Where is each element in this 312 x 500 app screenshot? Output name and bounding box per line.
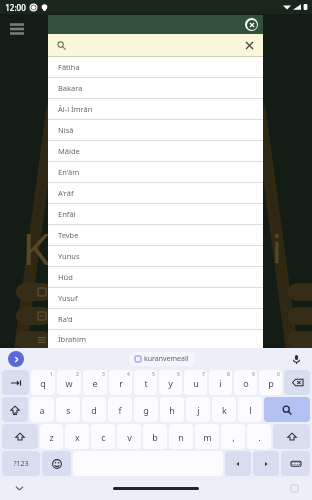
staticText: j	[197, 404, 200, 416]
button[interactable]: k	[212, 397, 236, 422]
staticText: r	[119, 377, 123, 389]
staticText: e	[92, 377, 98, 389]
staticText: g	[143, 404, 149, 416]
button[interactable]: Search	[264, 397, 310, 422]
button[interactable]: i	[209, 370, 232, 395]
button[interactable]: Move cursor right	[253, 451, 279, 476]
button[interactable]: Clear search	[242, 38, 256, 52]
staticText: k	[222, 404, 227, 416]
button[interactable]: Tool 0	[16, 283, 52, 301]
button[interactable]: f	[108, 397, 132, 422]
button[interactable]: m	[195, 424, 219, 449]
button[interactable]: Expand toolbar	[8, 351, 24, 367]
staticText: h	[169, 404, 175, 416]
button[interactable]: ,	[221, 424, 245, 449]
button[interactable]: Keyboard settings	[288, 482, 300, 494]
button[interactable]: Tool 1	[16, 307, 52, 325]
button[interactable]: Bakara	[48, 78, 263, 98]
button[interactable]: l	[238, 397, 262, 422]
staticText: n	[178, 431, 184, 443]
button[interactable]: Mâide	[48, 141, 263, 161]
button[interactable]: Nisâ	[48, 120, 263, 140]
button[interactable]: o	[234, 370, 257, 395]
button[interactable]: Switch keyboard	[281, 451, 310, 476]
staticText: y	[168, 377, 173, 389]
button[interactable]: v	[117, 424, 141, 449]
staticText: l	[249, 404, 252, 416]
button[interactable]: d	[82, 397, 106, 422]
staticText: v	[127, 431, 132, 443]
button[interactable]: Panel 2	[288, 331, 312, 349]
button[interactable]: Fâtiha	[48, 57, 263, 77]
button[interactable]: x	[65, 424, 89, 449]
button[interactable]: Tab	[2, 370, 29, 395]
button[interactable]: Shift	[273, 424, 310, 449]
staticText: ?123	[13, 459, 29, 469]
button[interactable]: İbrahim	[48, 330, 263, 348]
button[interactable]: kuranvemeali	[129, 352, 195, 366]
button[interactable]: h	[160, 397, 184, 422]
button[interactable]: Yusuf	[48, 288, 263, 308]
button[interactable]: Close	[245, 18, 258, 31]
button[interactable]: n	[169, 424, 193, 449]
button[interactable]: Menu	[2, 14, 32, 44]
button[interactable]: w	[57, 370, 81, 395]
button[interactable]: g	[134, 397, 158, 422]
staticText: İbrahim	[58, 334, 86, 344]
button[interactable]: e	[83, 370, 107, 395]
staticText: A'râf	[58, 188, 74, 198]
staticText: m	[203, 431, 212, 443]
button[interactable]: b	[143, 424, 167, 449]
button[interactable]: .	[247, 424, 271, 449]
button[interactable]: En'âm	[48, 162, 263, 182]
button[interactable]: Panel 0	[288, 283, 312, 301]
staticText: Nisâ	[58, 125, 74, 135]
button[interactable]: u	[184, 370, 207, 395]
button[interactable]: Yunus	[48, 246, 263, 266]
staticText: b	[152, 431, 158, 443]
staticText: x	[75, 431, 80, 443]
button[interactable]: y	[159, 370, 182, 395]
button[interactable]: ?123	[2, 451, 40, 476]
button[interactable]: Hide keyboard	[12, 481, 26, 495]
staticText: i	[272, 222, 282, 274]
button[interactable]: Shift	[2, 424, 38, 449]
button[interactable]: Tevbe	[48, 225, 263, 245]
button[interactable]: j	[186, 397, 210, 422]
staticText: f	[118, 404, 122, 416]
button[interactable]: t	[134, 370, 157, 395]
staticText: t	[144, 377, 148, 389]
staticText: Enfâl	[58, 209, 76, 219]
staticText: 3	[102, 371, 105, 378]
button[interactable]: z	[40, 424, 63, 449]
staticText: 8	[227, 371, 230, 378]
staticText: q	[40, 377, 46, 389]
button[interactable]: A'râf	[48, 183, 263, 203]
staticText: s	[66, 404, 71, 416]
button[interactable]: Tool 2	[16, 331, 52, 349]
button[interactable]: Emoji	[42, 451, 71, 476]
button[interactable]: c	[91, 424, 115, 449]
button[interactable]: Voice input	[288, 351, 304, 367]
button[interactable]: Clear search	[48, 34, 263, 56]
button[interactable]: Move cursor left	[225, 451, 251, 476]
staticText: 4	[127, 371, 130, 378]
button[interactable]: Backspace	[284, 370, 310, 395]
staticText: 6	[177, 371, 180, 378]
button[interactable]: Enfâl	[48, 204, 263, 224]
button[interactable]: Hûd	[48, 267, 263, 287]
button[interactable]: q	[31, 370, 55, 395]
button[interactable]: s	[56, 397, 80, 422]
staticText: K	[22, 218, 50, 278]
button[interactable]: Ra'd	[48, 309, 263, 329]
button[interactable]: Caps lock	[2, 397, 28, 422]
button[interactable]: Âl-i İmrân	[48, 99, 263, 119]
staticText: c	[101, 431, 106, 443]
button[interactable]: r	[109, 370, 132, 395]
button[interactable]: p	[259, 370, 282, 395]
staticText: z	[49, 431, 54, 443]
staticText: 1	[50, 371, 53, 378]
button[interactable]: a	[30, 397, 54, 422]
